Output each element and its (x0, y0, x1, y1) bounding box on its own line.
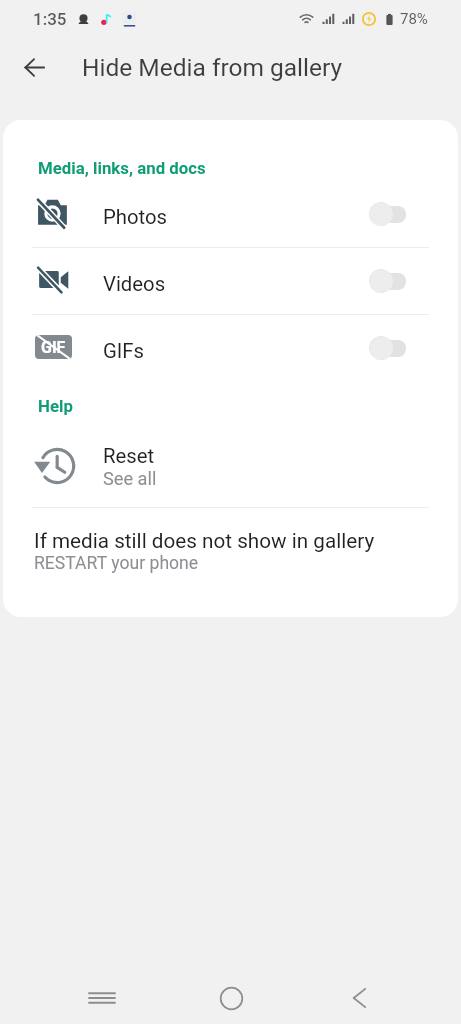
staticText: GIFs (103, 339, 145, 363)
staticText: Reset (103, 444, 155, 468)
staticText: RESTART your phone (34, 553, 199, 574)
button[interactable]: Back (333, 972, 385, 1024)
button[interactable]: Reset (3, 433, 458, 499)
staticText: Help (38, 396, 73, 416)
button[interactable]: Back (10, 43, 58, 91)
staticText: Photos (103, 205, 168, 229)
button[interactable]: Recent apps (76, 972, 128, 1024)
button[interactable]: GIF (3, 315, 458, 381)
staticText: Videos (103, 272, 166, 296)
staticText: Media, links, and docs (38, 158, 206, 178)
staticText: 78% (400, 10, 428, 28)
staticText: 1:35 (33, 9, 67, 29)
staticText: Hide Media from gallery (82, 53, 343, 82)
staticText: If media still does not show in gallery (34, 529, 375, 553)
staticText: GIF (41, 338, 66, 357)
staticText: See all (103, 468, 157, 489)
button[interactable]: Videos (3, 248, 458, 314)
button[interactable]: Home (205, 972, 257, 1024)
button[interactable]: Photos (3, 181, 458, 247)
